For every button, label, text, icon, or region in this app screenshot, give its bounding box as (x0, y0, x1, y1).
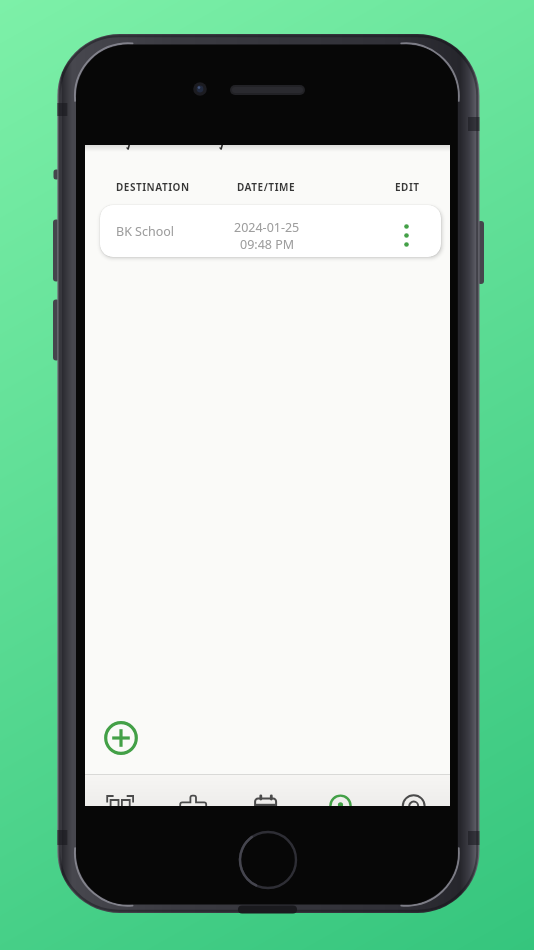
staticText: BK School (116, 223, 175, 240)
button[interactable] (390, 205, 441, 257)
staticText: 09:48 PM (240, 236, 295, 249)
staticText: DESTINATION (116, 180, 190, 194)
button[interactable] (99, 716, 143, 760)
button[interactable] (158, 775, 231, 806)
staticText: 2024-01-25 (234, 219, 300, 236)
staticText: DATE/TIME (237, 180, 296, 194)
button[interactable] (304, 775, 377, 806)
button[interactable] (85, 775, 158, 806)
staticText: EDIT (395, 180, 420, 194)
button[interactable]: BK School (100, 205, 441, 257)
button[interactable] (231, 775, 304, 806)
button[interactable] (377, 775, 450, 806)
